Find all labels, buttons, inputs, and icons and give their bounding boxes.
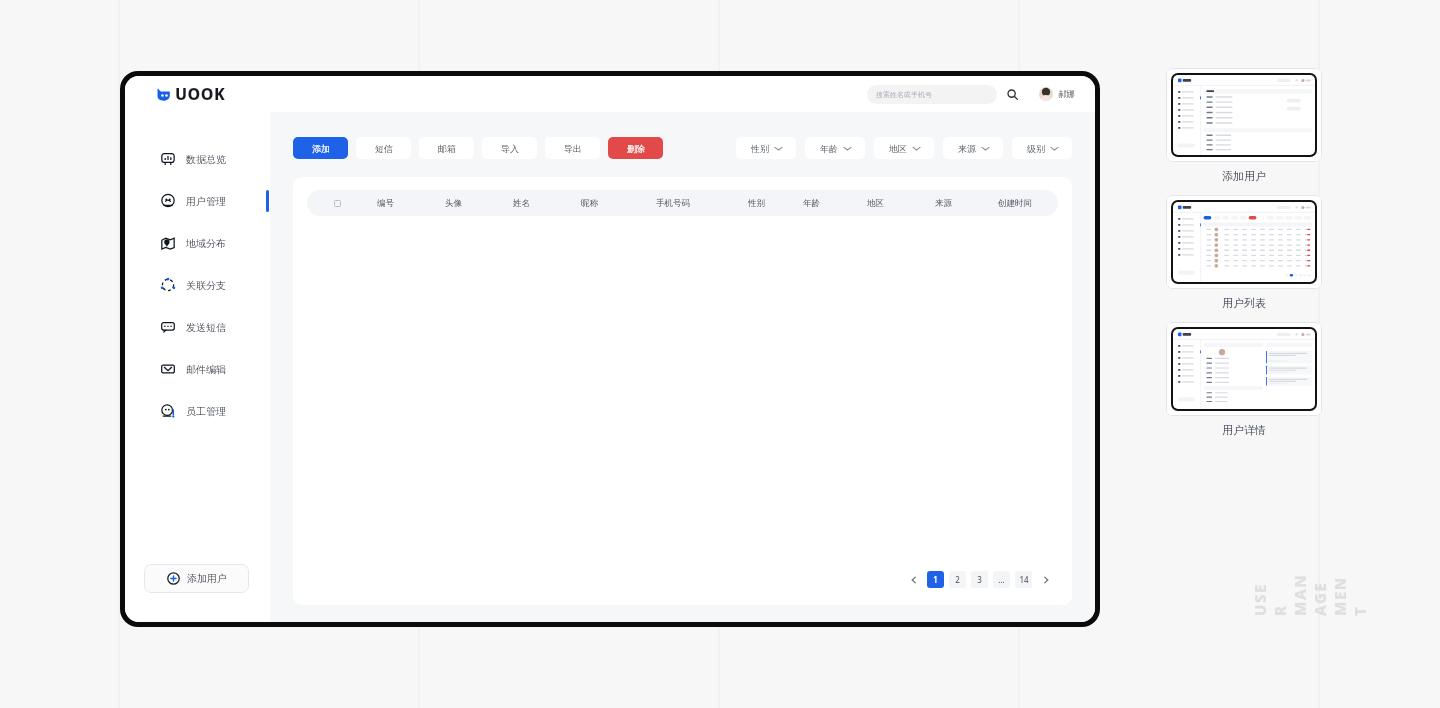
staticText: 昵称 <box>581 198 598 209</box>
staticText: 关联分支 <box>186 279 226 292</box>
staticText: 导入 <box>501 143 519 154</box>
button[interactable]: 级别 <box>1012 137 1072 159</box>
button[interactable]: 14 <box>1015 571 1032 588</box>
staticText: USER MANAGEMENT <box>1250 572 1370 616</box>
staticText: 性别 <box>751 143 769 154</box>
button[interactable]: 员工管理 <box>125 390 270 432</box>
button[interactable]: 3 <box>971 571 988 588</box>
staticText: 姓名 <box>513 198 530 209</box>
button[interactable]: 来源 <box>943 137 1003 159</box>
staticText: 年龄 <box>803 198 820 209</box>
button[interactable]: Select all <box>334 200 341 207</box>
button[interactable] <box>1166 68 1322 162</box>
button[interactable]: 搜索姓名或手机号 <box>867 85 997 104</box>
button[interactable]: 添加用户 <box>144 564 249 593</box>
staticText: 导出 <box>564 143 582 154</box>
staticText: 2 <box>955 574 960 585</box>
button[interactable]: 性别 <box>736 137 796 159</box>
staticText: 3 <box>977 574 982 585</box>
button[interactable]: 删除 <box>608 137 663 159</box>
button[interactable]: 邮件编辑 <box>125 348 270 390</box>
staticText: 删除 <box>627 143 645 154</box>
button[interactable]: Search <box>1003 85 1021 103</box>
button[interactable]: Next page <box>1037 571 1054 588</box>
button[interactable]: 1 <box>927 571 944 588</box>
staticText: 地区 <box>889 143 907 154</box>
button[interactable] <box>1166 322 1322 416</box>
staticText: 用户列表 <box>1222 296 1266 310</box>
staticText: 年龄 <box>820 143 838 154</box>
button[interactable]: 添加 <box>293 137 348 159</box>
button[interactable]: 年龄 <box>805 137 865 159</box>
staticText: 发送短信 <box>186 321 226 334</box>
staticText: 地区 <box>867 198 884 209</box>
staticText: 员工管理 <box>186 405 226 418</box>
button[interactable] <box>1166 195 1322 289</box>
staticText: 添加 <box>312 143 330 154</box>
staticText: 用户管理 <box>186 195 226 208</box>
staticText: 来源 <box>958 143 976 154</box>
staticText: 创建时间 <box>998 198 1032 209</box>
staticText: 地域分布 <box>186 237 226 250</box>
staticText: 性别 <box>748 198 765 209</box>
staticText: 邮件编辑 <box>186 363 226 376</box>
staticText: 郝娜 <box>1058 89 1075 100</box>
button[interactable]: 2 <box>949 571 966 588</box>
staticText: UOOK <box>175 83 226 105</box>
button[interactable]: 发送短信 <box>125 306 270 348</box>
button[interactable]: Previous page <box>905 571 922 588</box>
button[interactable]: 用户管理 <box>125 180 270 222</box>
button[interactable]: 导入 <box>482 137 537 159</box>
staticText: 添加用户 <box>1222 169 1266 183</box>
button[interactable]: 郝娜 <box>1039 87 1075 101</box>
staticText: 来源 <box>935 198 952 209</box>
staticText: 用户详情 <box>1222 423 1266 437</box>
staticText: 14 <box>1019 574 1029 585</box>
staticText: … <box>998 574 1005 585</box>
staticText: 搜索姓名或手机号 <box>876 90 932 99</box>
button[interactable]: 数据总览 <box>125 138 270 180</box>
staticText: 添加用户 <box>187 572 227 585</box>
staticText: 手机号码 <box>656 198 690 209</box>
staticText: 数据总览 <box>186 153 226 166</box>
staticText: 级别 <box>1027 143 1045 154</box>
button[interactable]: 导出 <box>545 137 600 159</box>
staticText: 头像 <box>445 198 462 209</box>
button[interactable]: 地域分布 <box>125 222 270 264</box>
staticText: 短信 <box>375 143 393 154</box>
button[interactable]: 短信 <box>356 137 411 159</box>
staticText: 1 <box>933 574 938 585</box>
button[interactable]: 关联分支 <box>125 264 270 306</box>
button[interactable]: 地区 <box>874 137 934 159</box>
staticText: 邮箱 <box>438 143 456 154</box>
button[interactable]: 邮箱 <box>419 137 474 159</box>
button[interactable]: … <box>993 571 1010 588</box>
staticText: 编号 <box>377 198 394 209</box>
